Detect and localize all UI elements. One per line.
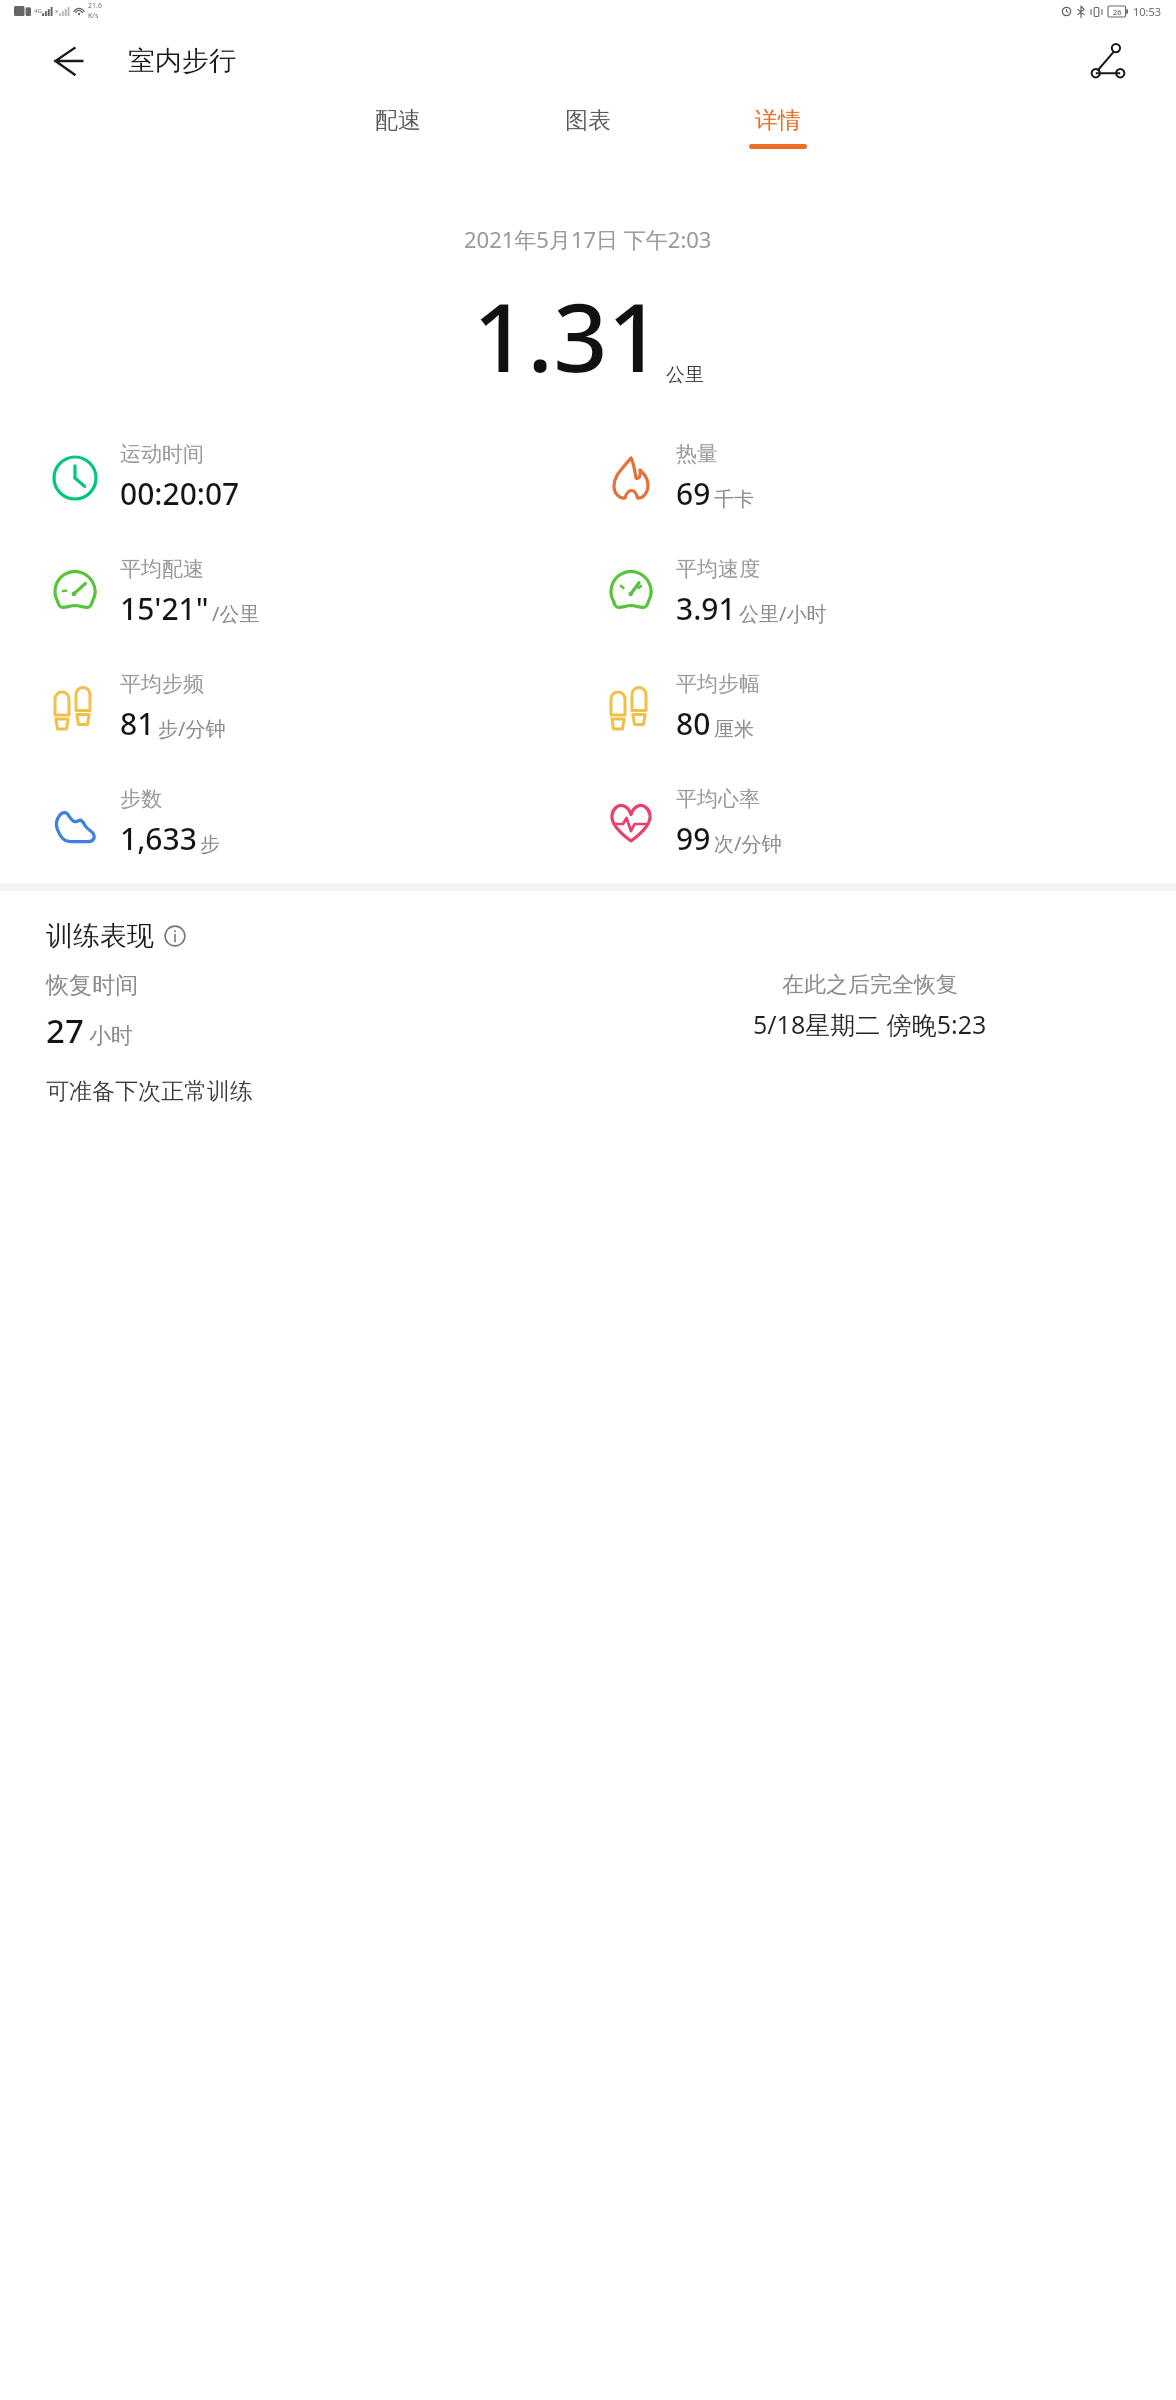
staticText: 平均步幅 [676, 671, 760, 697]
staticText: 3.91 [676, 588, 736, 629]
staticText: 在此之后完全恢复 [782, 971, 958, 999]
staticText: 1,633 [120, 818, 197, 859]
staticText: K/s [88, 11, 99, 21]
staticText: 步数 [120, 786, 162, 812]
staticText: 厘米 [714, 717, 754, 742]
staticText: 公里 [666, 363, 704, 387]
staticText: 步 [200, 832, 220, 857]
button[interactable]: 详情 [718, 100, 838, 149]
staticText: 次/分钟 [714, 830, 782, 857]
staticText: 可准备下次正常训练 [46, 1077, 253, 1106]
button[interactable]: 平均配速 [46, 556, 588, 629]
button[interactable]: 图表 [528, 100, 648, 149]
staticText: 26 [1113, 7, 1122, 17]
button[interactable]: 配速 [338, 100, 458, 149]
button[interactable]: 平均步频 [46, 671, 588, 744]
staticText: 2021年5月17日 下午2:03 [464, 224, 712, 254]
staticText: /公里 [212, 600, 260, 627]
staticText: 热量 [676, 441, 718, 467]
staticText: 室内步行 [128, 44, 236, 78]
button[interactable]: 热量 [602, 441, 1176, 514]
staticText: 运动时间 [120, 441, 204, 467]
staticText: 21.6 [88, 1, 102, 11]
button[interactable]: 平均步幅 [602, 671, 1176, 744]
button[interactable]: 分享 [1082, 35, 1134, 87]
staticText: 69 [676, 473, 711, 514]
button[interactable]: 返回 [44, 38, 90, 84]
button[interactable]: 训练表现 [46, 919, 186, 953]
staticText: x [55, 7, 59, 15]
staticText: 80 [676, 703, 711, 744]
staticText: 81 [120, 703, 155, 744]
staticText: 平均配速 [120, 556, 204, 582]
button[interactable]: 平均速度 [602, 556, 1176, 629]
button[interactable]: 平均心率 [602, 786, 1176, 859]
staticText: 99 [676, 818, 711, 859]
staticText: 15'21" [120, 588, 209, 629]
staticText: 小时 [89, 1022, 133, 1050]
staticText: 平均心率 [676, 786, 760, 812]
staticText: 27 [46, 1008, 84, 1053]
staticText: 00:20:07 [120, 473, 240, 514]
staticText: 1.31 [473, 270, 662, 399]
staticText: 5/18星期二 傍晚5:23 [753, 1007, 987, 1041]
button[interactable]: 运动时间 [46, 441, 588, 514]
other: 说明 [164, 925, 186, 947]
staticText: 4G [34, 7, 42, 15]
staticText: 详情 [755, 106, 801, 135]
staticText: 步/分钟 [158, 715, 226, 742]
staticText: 平均速度 [676, 556, 760, 582]
staticText: 10:53 [1133, 4, 1162, 19]
staticText: 配速 [375, 106, 421, 135]
staticText: 训练表现 [46, 919, 154, 953]
staticText: 公里/小时 [739, 600, 827, 627]
staticText: 恢复时间 [46, 971, 138, 1000]
staticText: 千卡 [714, 487, 754, 512]
button[interactable]: 步数 [46, 786, 588, 859]
staticText: 图表 [565, 106, 611, 135]
staticText: 平均步频 [120, 671, 204, 697]
